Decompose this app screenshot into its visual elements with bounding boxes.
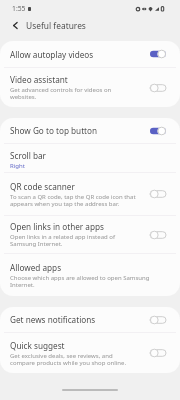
button[interactable]: Show Go to top button (0, 118, 180, 143)
button[interactable]: Off (147, 82, 169, 94)
staticText: Useful features (26, 20, 86, 31)
button[interactable]: Scroll bar (0, 144, 180, 172)
staticText: Allow autoplay videos (10, 49, 94, 60)
button[interactable]: Allowed apps (0, 254, 180, 296)
button[interactable]: QR code scanner (0, 173, 180, 215)
staticText: Right (10, 162, 25, 170)
staticText: Allowed apps (10, 262, 62, 273)
staticText: Video assistant (10, 74, 68, 85)
staticText: Open links in a related app instead of S… (10, 233, 137, 248)
staticText: Get news notifications (10, 314, 96, 325)
staticText: Scroll bar (10, 150, 46, 161)
button[interactable]: Off (147, 314, 169, 326)
staticText: Choose which apps are allowed to open Sa… (10, 274, 158, 289)
button[interactable]: Off (147, 347, 169, 359)
button[interactable]: Allow autoplay videos (0, 41, 180, 67)
button[interactable]: Get news notifications (0, 307, 180, 332)
staticText: QR code scanner (10, 181, 75, 192)
button[interactable]: On (147, 48, 169, 60)
button[interactable]: Quick suggest (0, 333, 180, 373)
button[interactable]: Navigate up (0, 16, 26, 35)
button[interactable]: Open links in other apps (0, 216, 180, 253)
button[interactable]: Off (147, 229, 169, 241)
staticText: Quick suggest (10, 340, 65, 351)
staticText: 1:55 (12, 4, 26, 13)
staticText: To scan a QR code, tap the QR code icon … (10, 193, 137, 208)
button[interactable]: On (147, 125, 169, 137)
button[interactable]: Off (147, 188, 169, 200)
staticText: Show Go to top button (10, 125, 98, 136)
staticText: Get exclusive deals, see reviews, and co… (10, 352, 137, 367)
staticText: Open links in other apps (10, 221, 104, 232)
button[interactable]: Video assistant (0, 68, 180, 107)
staticText: Get advanced controls for videos on webs… (10, 86, 137, 101)
